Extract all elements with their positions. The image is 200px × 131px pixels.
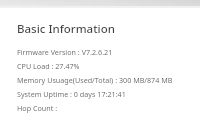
staticText: Basic Information [17, 21, 115, 37]
staticText: System Uptime : 0 days 17:21:41 [17, 89, 190, 99]
staticText: Memory Usuage(Used/Total) : 300 MB/874 M… [17, 75, 190, 85]
staticText: CPU Load : 27.47% [17, 61, 190, 71]
staticText: Hop Count : [17, 103, 190, 113]
staticText: Firmware Version : V7.2.6.21 [17, 47, 190, 57]
